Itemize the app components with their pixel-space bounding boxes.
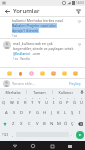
button[interactable]: X [17, 118, 25, 129]
button[interactable]: Kullanıcı [53, 88, 78, 96]
staticText: T [31, 100, 34, 106]
button[interactable]: Home [29, 142, 37, 150]
button[interactable]: 8 [50, 96, 57, 107]
button[interactable]: 1 [71, 96, 78, 107]
button[interactable]: Emoji [50, 70, 57, 77]
button[interactable]: . [69, 129, 75, 140]
staticText: A [5, 110, 8, 116]
staticText: B [43, 121, 46, 127]
button[interactable]: S [10, 107, 18, 118]
button[interactable]: , [10, 129, 16, 140]
button[interactable]: Emoji [72, 70, 79, 77]
button[interactable]: 3 [15, 96, 22, 107]
staticText: 1sa [13, 57, 18, 61]
button[interactable]: D [18, 107, 26, 118]
button[interactable]: A [2, 107, 10, 118]
button[interactable]: 2 [8, 96, 15, 107]
button[interactable]: Yanıtla [20, 57, 30, 61]
button[interactable]: Recents [48, 142, 56, 150]
staticText: Ö [64, 121, 68, 127]
staticText: I [79, 110, 81, 116]
button[interactable]: Keyboard [66, 142, 74, 150]
staticText: F [29, 110, 32, 116]
button[interactable]: Yorum ekle... [12, 81, 68, 86]
button[interactable]: Ç [69, 118, 76, 129]
staticText: kullanici Merhaba herkes nasıl [12, 18, 64, 23]
staticText: 0 [67, 97, 69, 100]
button[interactable]: J [48, 107, 55, 118]
staticText: H [43, 110, 47, 116]
staticText: Ğ [73, 100, 77, 106]
button[interactable]: L [62, 107, 69, 118]
button[interactable]: Like [76, 41, 82, 47]
staticText: 3 [18, 97, 20, 100]
staticText: W [10, 100, 14, 106]
button[interactable]: I [76, 107, 83, 118]
staticText: Ü [80, 100, 84, 106]
staticText: Z [12, 121, 15, 127]
staticText: E [17, 100, 20, 106]
button[interactable]: 0 [64, 96, 71, 107]
button[interactable]: 6 [36, 96, 43, 107]
button[interactable]: Emoji [39, 70, 46, 77]
staticText: #proje1 #örnek [12, 28, 39, 33]
button[interactable]: Emoji [28, 70, 35, 77]
button[interactable]: Merhaba [0, 88, 26, 96]
button[interactable]: F [26, 107, 34, 118]
button[interactable]: C [25, 118, 33, 129]
button[interactable]: Like [76, 18, 82, 24]
button[interactable]: 5 [29, 96, 36, 107]
staticText: Bakalım Projeler nasıl olur [12, 23, 57, 28]
staticText: U [45, 100, 49, 106]
staticText: Y [38, 100, 41, 106]
button[interactable]: Emoji [6, 70, 13, 77]
button[interactable]: 4 [22, 96, 29, 107]
button[interactable]: 2 [78, 96, 85, 107]
button[interactable]: ?123 [1, 129, 10, 140]
staticText: J [51, 110, 53, 116]
staticText: 14:53 [76, 1, 84, 5]
staticText: O [59, 100, 63, 106]
staticText: Kullanıcı [58, 90, 73, 95]
staticText: 1 [74, 97, 76, 100]
button[interactable]: V [33, 118, 41, 129]
button[interactable]: 7 [43, 96, 50, 107]
staticText: I [53, 100, 55, 106]
button[interactable]: Shift [0, 118, 9, 129]
staticText: .com [31, 51, 41, 56]
staticText: mail_kullanıcıadı en çok [13, 41, 53, 46]
button[interactable]: Back [11, 142, 19, 150]
button[interactable]: Z [9, 118, 17, 129]
staticText: V [36, 121, 39, 127]
button[interactable]: Back [3, 7, 11, 15]
staticText: P [66, 100, 69, 106]
button[interactable]: Backspace [76, 118, 85, 129]
staticText: Paylaş [69, 81, 81, 86]
button[interactable]: Voice input [78, 88, 85, 96]
staticText: R [24, 100, 27, 106]
staticText: . [71, 132, 73, 137]
button[interactable]: B [41, 118, 48, 129]
button[interactable]: Ö [62, 118, 69, 129]
staticText: Tamam [33, 90, 46, 95]
button[interactable]: H [41, 107, 48, 118]
staticText: 2 [81, 97, 83, 100]
button[interactable]: K [55, 107, 62, 118]
button[interactable]: N [48, 118, 55, 129]
staticText: 1 [3, 97, 5, 100]
button[interactable]: Paylaş [68, 81, 82, 86]
button[interactable]: 1 [0, 96, 8, 107]
button[interactable]: Filter [74, 7, 82, 15]
button[interactable]: 9 [57, 96, 64, 107]
button[interactable]: Emoji [61, 70, 68, 77]
button[interactable]: Ş [69, 107, 76, 118]
staticText: C [28, 121, 31, 127]
staticText: @kullanici [13, 51, 31, 56]
button[interactable]: M [55, 118, 62, 129]
button[interactable]: Send [76, 131, 84, 139]
button[interactable]: G [34, 107, 41, 118]
button[interactable]: Tamam [27, 88, 52, 96]
staticText: , [12, 132, 14, 137]
button[interactable]: Emoji [17, 70, 24, 77]
